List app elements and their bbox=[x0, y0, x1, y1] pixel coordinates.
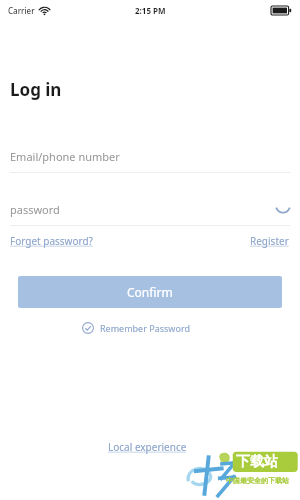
staticText: password bbox=[10, 202, 60, 217]
staticText: Remember Password bbox=[100, 322, 190, 334]
staticText: Email/phone number bbox=[10, 149, 120, 164]
button[interactable]: Email/phone number bbox=[0, 140, 300, 173]
button[interactable]: Forget password? bbox=[10, 232, 93, 250]
staticText: 下载站 bbox=[236, 453, 278, 471]
staticText: Log in bbox=[10, 78, 62, 101]
staticText: Register bbox=[250, 234, 289, 248]
staticText: Confirm bbox=[127, 284, 173, 300]
staticText: Carrier bbox=[8, 5, 35, 16]
staticText: Forget password? bbox=[10, 234, 93, 248]
button[interactable]: Confirm bbox=[18, 276, 282, 308]
staticText: 中国最安全的下载站 bbox=[226, 476, 289, 485]
staticText: 2:15 PM bbox=[135, 5, 166, 16]
button[interactable]: Local experience bbox=[108, 438, 187, 456]
button[interactable]: Remember Password bbox=[82, 319, 190, 337]
button[interactable]: password bbox=[0, 194, 300, 225]
button[interactable]: Show password bbox=[272, 198, 294, 220]
button[interactable]: Register bbox=[250, 232, 289, 250]
staticText: Local experience bbox=[108, 440, 187, 454]
